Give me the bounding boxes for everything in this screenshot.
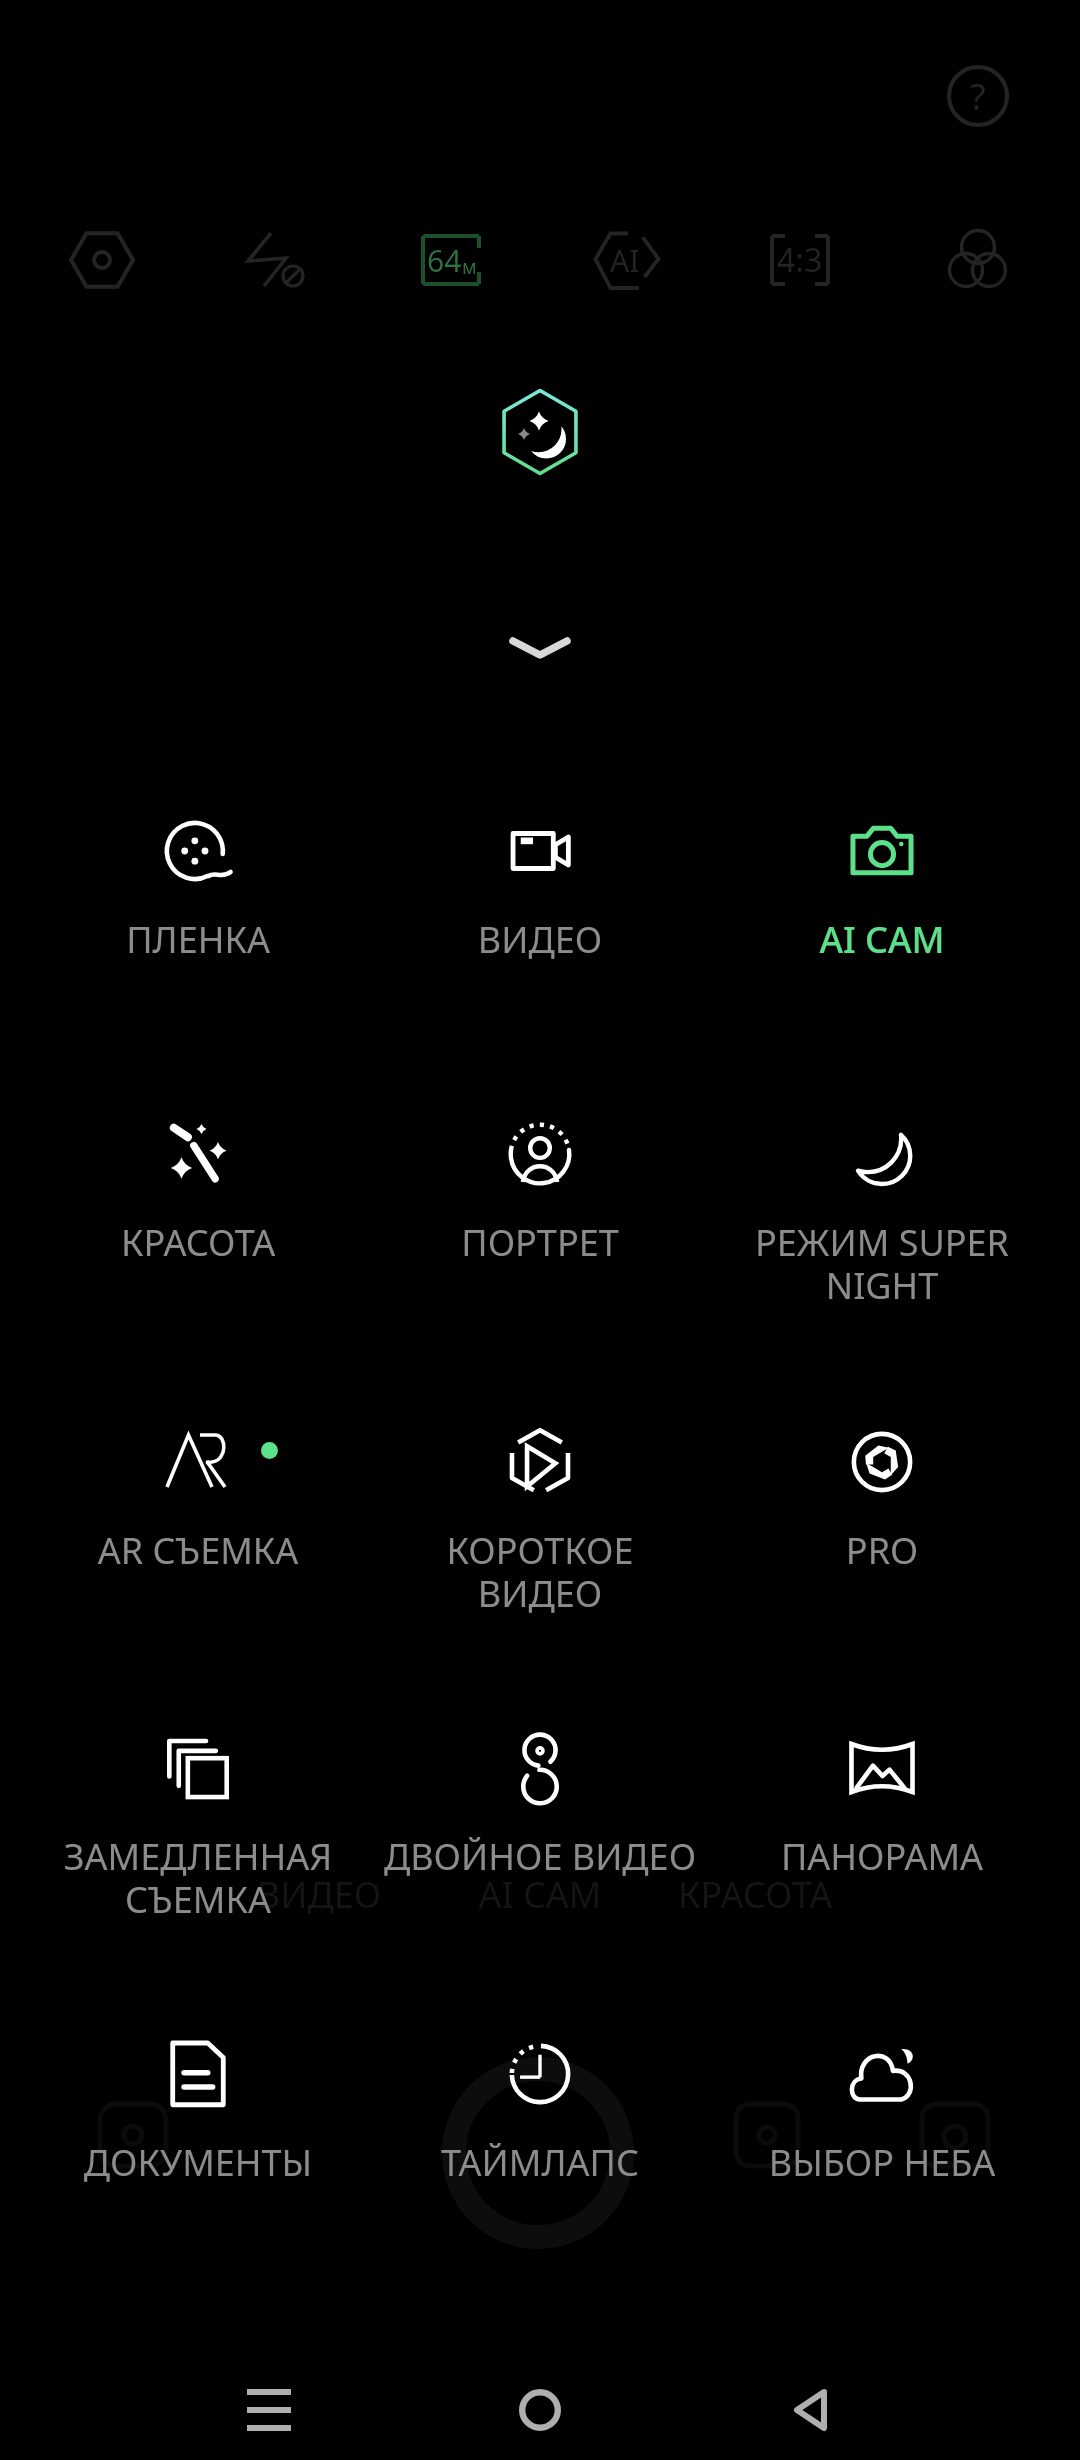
staticText: PRO [711, 1526, 1053, 1575]
staticText: ТАЙМЛАПС [369, 2138, 711, 2187]
staticText: ДОКУМЕНТЫ [27, 2138, 369, 2187]
button[interactable]: Collapse mode list [490, 598, 590, 698]
button[interactable]: ЗАМЕДЛЕННАЯ СЪЕМКА [27, 1699, 369, 1924]
button[interactable]: AI scene detection [583, 216, 671, 304]
button[interactable]: AR СЪЕМКА [27, 1393, 369, 1575]
button[interactable]: Home [495, 2365, 585, 2455]
button[interactable]: PRO [711, 1393, 1053, 1575]
staticText: ВЫБОР НЕБА [711, 2138, 1053, 2187]
button[interactable]: ПОРТРЕТ [369, 1085, 711, 1267]
button[interactable]: 64 MP [407, 216, 495, 304]
staticText: AR СЪЕМКА [27, 1526, 369, 1575]
staticText: ЗАМЕДЛЕННАЯ СЪЕМКА [27, 1832, 369, 1924]
button[interactable]: ТАЙМЛАПС [369, 2005, 711, 2187]
staticText: РЕЖИМ SUPER NIGHT [711, 1218, 1053, 1310]
button[interactable]: Aspect ratio 4:3 [756, 216, 844, 304]
button[interactable]: HDR [58, 216, 146, 304]
button[interactable]: ПЛЕНКА [27, 782, 369, 964]
button[interactable]: ВИДЕО [369, 782, 711, 964]
staticText: ВИДЕО [148, 1870, 490, 1919]
button[interactable]: ДОКУМЕНТЫ [27, 2005, 369, 2187]
staticText: КРАСОТА [27, 1218, 369, 1267]
button[interactable]: Recent apps [224, 2365, 314, 2455]
staticText: 4:3 [777, 238, 823, 282]
button[interactable]: ВЫБОР НЕБА [711, 2005, 1053, 2187]
button[interactable]: ПАНОРАМА [711, 1699, 1053, 1881]
staticText: 64 [427, 240, 462, 281]
staticText: ДВОЙНОЕ ВИДЕО [369, 1832, 711, 1881]
staticText: ПЛЕНКА [27, 915, 369, 964]
button[interactable]: КРАСОТА [27, 1085, 369, 1267]
button[interactable]: Super Night mode [470, 362, 610, 502]
button[interactable]: Help [930, 48, 1026, 144]
staticText: ПАНОРАМА [711, 1832, 1053, 1881]
button[interactable]: Flash off [232, 216, 320, 304]
button[interactable]: РЕЖИМ SUPER NIGHT [711, 1085, 1053, 1310]
staticText: AI CAM [711, 915, 1053, 964]
staticText: м [462, 254, 477, 280]
staticText: AI [610, 240, 640, 281]
staticText: КОРОТКОЕ ВИДЕО [369, 1526, 711, 1618]
button[interactable]: AI CAM [711, 782, 1053, 964]
button[interactable]: Filters [933, 216, 1021, 304]
staticText: КРАСОТА [584, 1870, 926, 1919]
button[interactable]: КОРОТКОЕ ВИДЕО [369, 1393, 711, 1618]
staticText: ПОРТРЕТ [369, 1218, 711, 1267]
button[interactable]: ДВОЙНОЕ ВИДЕО [369, 1699, 711, 1881]
staticText: ВИДЕО [369, 915, 711, 964]
button[interactable]: Back [765, 2365, 855, 2455]
staticText: ? [970, 72, 986, 121]
staticText: AI CAM [369, 1870, 711, 1919]
